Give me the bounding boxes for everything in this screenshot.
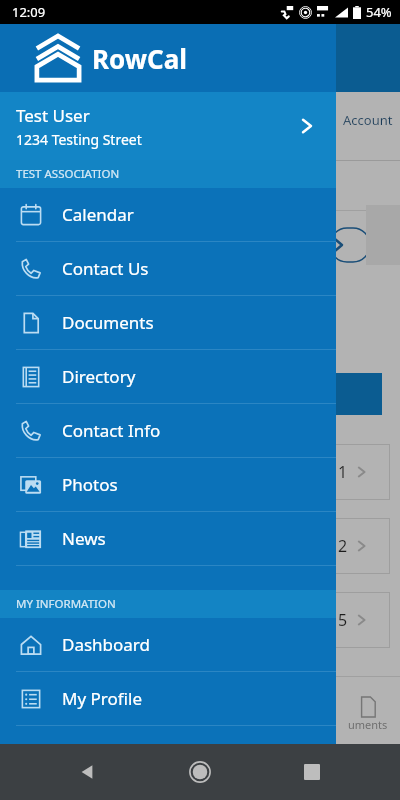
button[interactable]: Documents: [0, 296, 336, 349]
button[interactable]: Back: [64, 748, 112, 796]
button[interactable]: My Profile: [0, 672, 336, 725]
staticText: Directory: [62, 365, 136, 388]
button[interactable]: News: [0, 512, 336, 565]
staticText: Test User: [16, 104, 90, 127]
button[interactable]: Home: [176, 748, 224, 796]
staticText: My Profile: [62, 687, 142, 710]
staticText: 1: [338, 461, 348, 483]
staticText: 54%: [366, 3, 392, 21]
button[interactable]: Dashboard: [0, 618, 336, 671]
button[interactable]: Recent apps: [288, 748, 336, 796]
staticText: 12:09: [12, 3, 46, 21]
button[interactable]: Contact Us: [0, 242, 336, 295]
button[interactable]: Calendar: [0, 188, 336, 241]
staticText: News: [62, 527, 106, 550]
button[interactable]: Contact Info: [0, 404, 336, 457]
button[interactable]: Test User: [0, 92, 336, 160]
staticText: 1234 Testing Street: [16, 130, 142, 149]
staticText: Dashboard: [62, 633, 151, 656]
staticText: RowCal: [92, 41, 188, 76]
staticText: TEST ASSOCIATION: [16, 166, 120, 182]
staticText: 2: [338, 535, 348, 557]
button[interactable]: Photos: [0, 458, 336, 511]
staticText: uments: [348, 717, 388, 732]
staticText: Contact Us: [62, 257, 149, 280]
staticText: Calendar: [62, 203, 134, 226]
staticText: MY INFORMATION: [16, 596, 116, 612]
staticText: Documents: [62, 311, 154, 334]
staticText: Contact Info: [62, 419, 161, 442]
staticText: Photos: [62, 473, 118, 496]
staticText: Account: [343, 111, 393, 129]
button[interactable]: Directory: [0, 350, 336, 403]
staticText: 5: [338, 609, 348, 631]
